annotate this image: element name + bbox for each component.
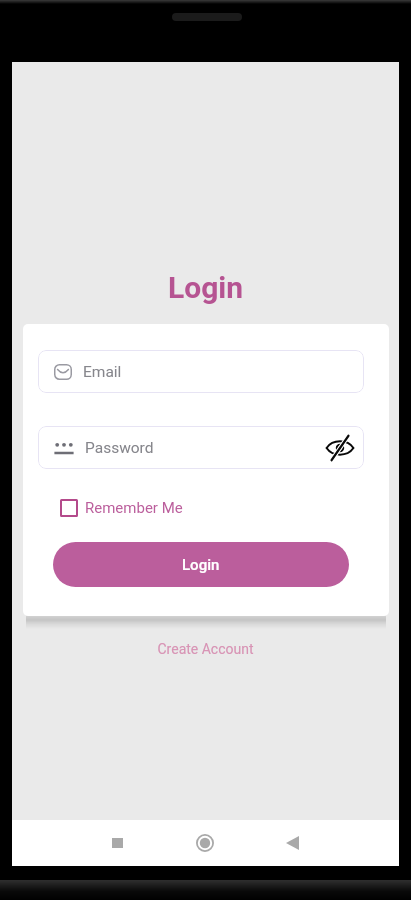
button[interactable]: Create Account <box>12 641 399 657</box>
button[interactable]: Recent apps <box>99 825 135 861</box>
button[interactable]: Password <box>38 426 364 469</box>
staticText: Remember Me <box>85 499 183 517</box>
button[interactable]: Email <box>38 350 364 393</box>
staticText: Password <box>85 439 154 457</box>
staticText: Create Account <box>12 641 399 657</box>
button[interactable]: Home <box>187 825 223 861</box>
button[interactable]: Remember Me <box>60 499 183 517</box>
staticText: Email <box>83 363 122 381</box>
staticText: Login <box>12 270 399 305</box>
button[interactable]: Back <box>274 825 310 861</box>
staticText: Login <box>182 556 220 574</box>
button[interactable]: Show password <box>325 433 355 463</box>
button[interactable]: Login <box>53 542 349 587</box>
